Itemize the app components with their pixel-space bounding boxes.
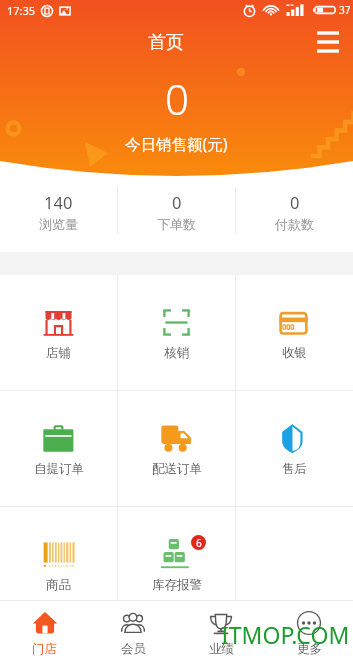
button[interactable]: 更多 bbox=[265, 601, 353, 661]
staticText: 业绩 bbox=[209, 641, 234, 657]
staticText: 更多 bbox=[297, 641, 322, 657]
button[interactable]: 配送订单 bbox=[118, 391, 235, 506]
staticText: 37 bbox=[339, 3, 351, 17]
staticText: 商品 bbox=[46, 577, 71, 593]
staticText: 0 bbox=[165, 70, 189, 127]
staticText: 下单数 bbox=[157, 216, 196, 232]
staticText: 0 bbox=[172, 191, 182, 213]
staticText: 6 bbox=[196, 536, 202, 550]
staticText: 0 bbox=[290, 191, 300, 213]
button[interactable]: 0 bbox=[236, 176, 353, 252]
staticText: 140 bbox=[44, 191, 73, 213]
staticText: 首页 bbox=[148, 31, 184, 54]
button[interactable]: 0 bbox=[118, 176, 235, 252]
staticText: 自提订单 bbox=[34, 461, 84, 477]
button[interactable]: 店铺 bbox=[0, 275, 117, 390]
staticText: 付款数 bbox=[275, 216, 314, 232]
staticText: 售后 bbox=[282, 461, 307, 477]
staticText: 17:35 bbox=[7, 3, 36, 18]
button[interactable]: 商品 bbox=[0, 507, 117, 600]
button[interactable]: 核销 bbox=[118, 275, 235, 390]
staticText: 库存报警 bbox=[152, 577, 202, 593]
button[interactable]: 会员 bbox=[89, 601, 177, 661]
staticText: ITMOP.COM bbox=[221, 619, 350, 650]
button[interactable]: Menu bbox=[311, 25, 345, 59]
staticText: 配送订单 bbox=[152, 461, 202, 477]
staticText: 门店 bbox=[32, 641, 57, 657]
button[interactable]: 门店 bbox=[0, 601, 89, 661]
button[interactable]: 售后 bbox=[236, 391, 353, 506]
button[interactable]: 自提订单 bbox=[0, 391, 117, 506]
staticText: 核销 bbox=[164, 345, 189, 361]
button[interactable]: 业绩 bbox=[177, 601, 265, 661]
staticText: 会员 bbox=[121, 641, 146, 657]
staticText: 店铺 bbox=[46, 345, 71, 361]
staticText: 收银 bbox=[282, 345, 307, 361]
button[interactable]: 收银 bbox=[236, 275, 353, 390]
button[interactable]: 6 bbox=[118, 507, 235, 600]
staticText: 今日销售额(元) bbox=[125, 133, 228, 154]
button[interactable]: 140 bbox=[0, 176, 117, 252]
staticText: 浏览量 bbox=[39, 216, 78, 232]
